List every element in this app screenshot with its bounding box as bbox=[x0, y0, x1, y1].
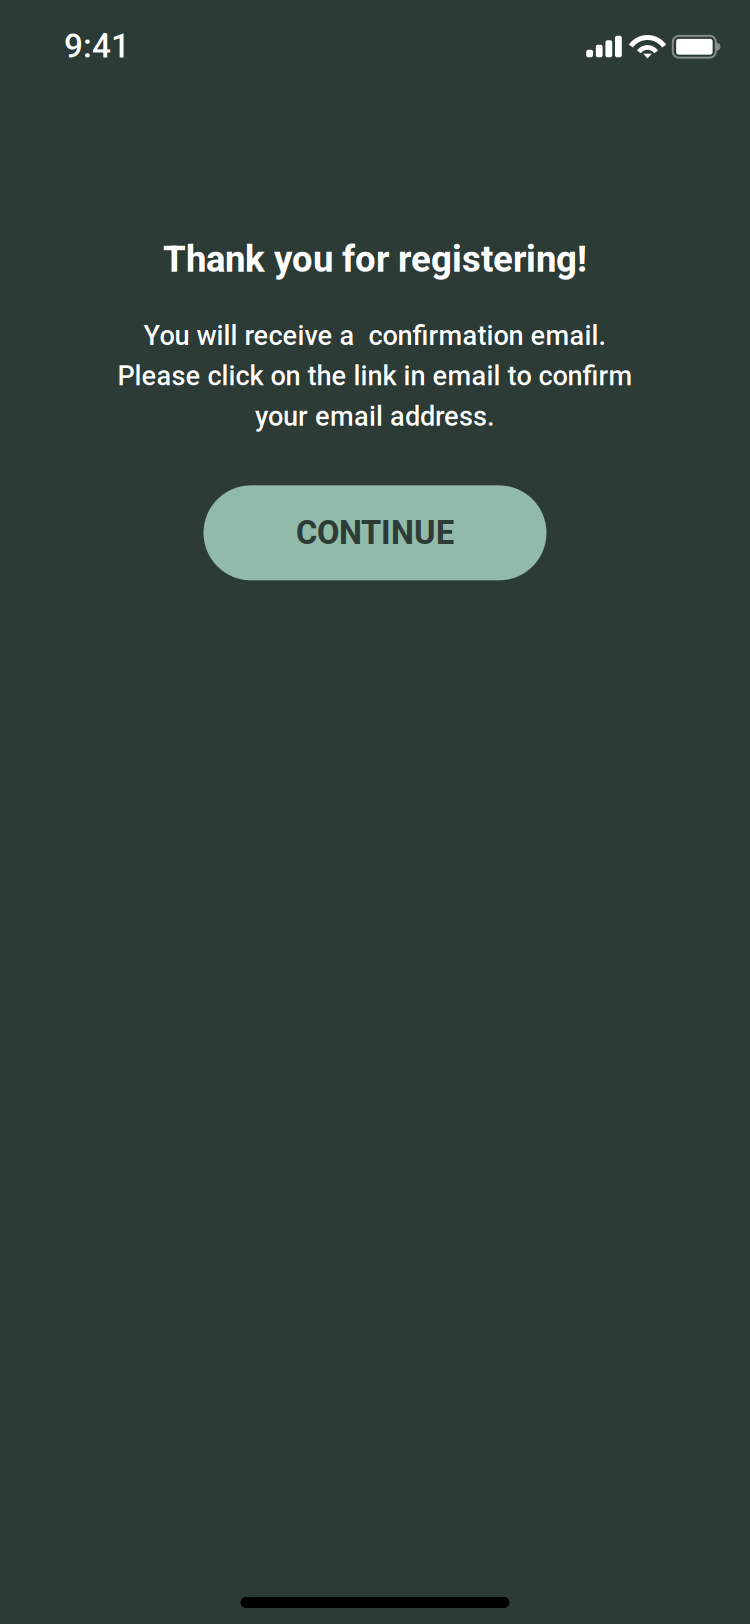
button[interactable]: CONTINUE bbox=[203, 485, 546, 580]
staticText: CONTINUE bbox=[296, 514, 454, 552]
staticText: You will receive a confirmation email. bbox=[143, 320, 606, 352]
staticText: 9:41 bbox=[64, 26, 130, 66]
staticText: Thank you for registering! bbox=[163, 238, 587, 281]
staticText: Please click on the link in email to con… bbox=[117, 360, 632, 392]
staticText: your email address. bbox=[255, 400, 495, 432]
